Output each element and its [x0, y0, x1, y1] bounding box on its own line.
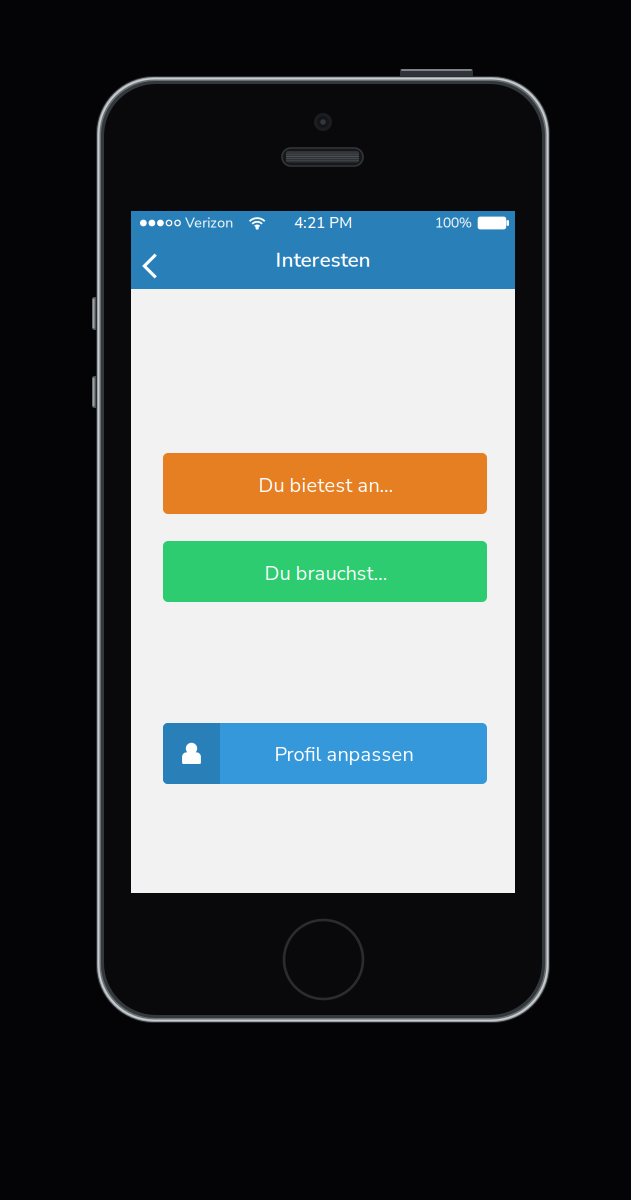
button[interactable]: Du bietest an… — [163, 453, 487, 514]
button[interactable]: Back — [131, 235, 169, 289]
staticText: Verizon — [185, 213, 233, 233]
button[interactable]: Du brauchst… — [163, 541, 487, 602]
staticText: 4:21 PM — [294, 212, 352, 233]
button[interactable]: Profil anpassen — [163, 723, 487, 784]
staticText: Interesten — [275, 246, 370, 274]
staticText: Du bietest an… — [258, 472, 393, 499]
staticText: Profil anpassen — [274, 741, 413, 768]
staticText: 100% — [435, 213, 472, 233]
staticText: Du brauchst… — [264, 560, 387, 587]
